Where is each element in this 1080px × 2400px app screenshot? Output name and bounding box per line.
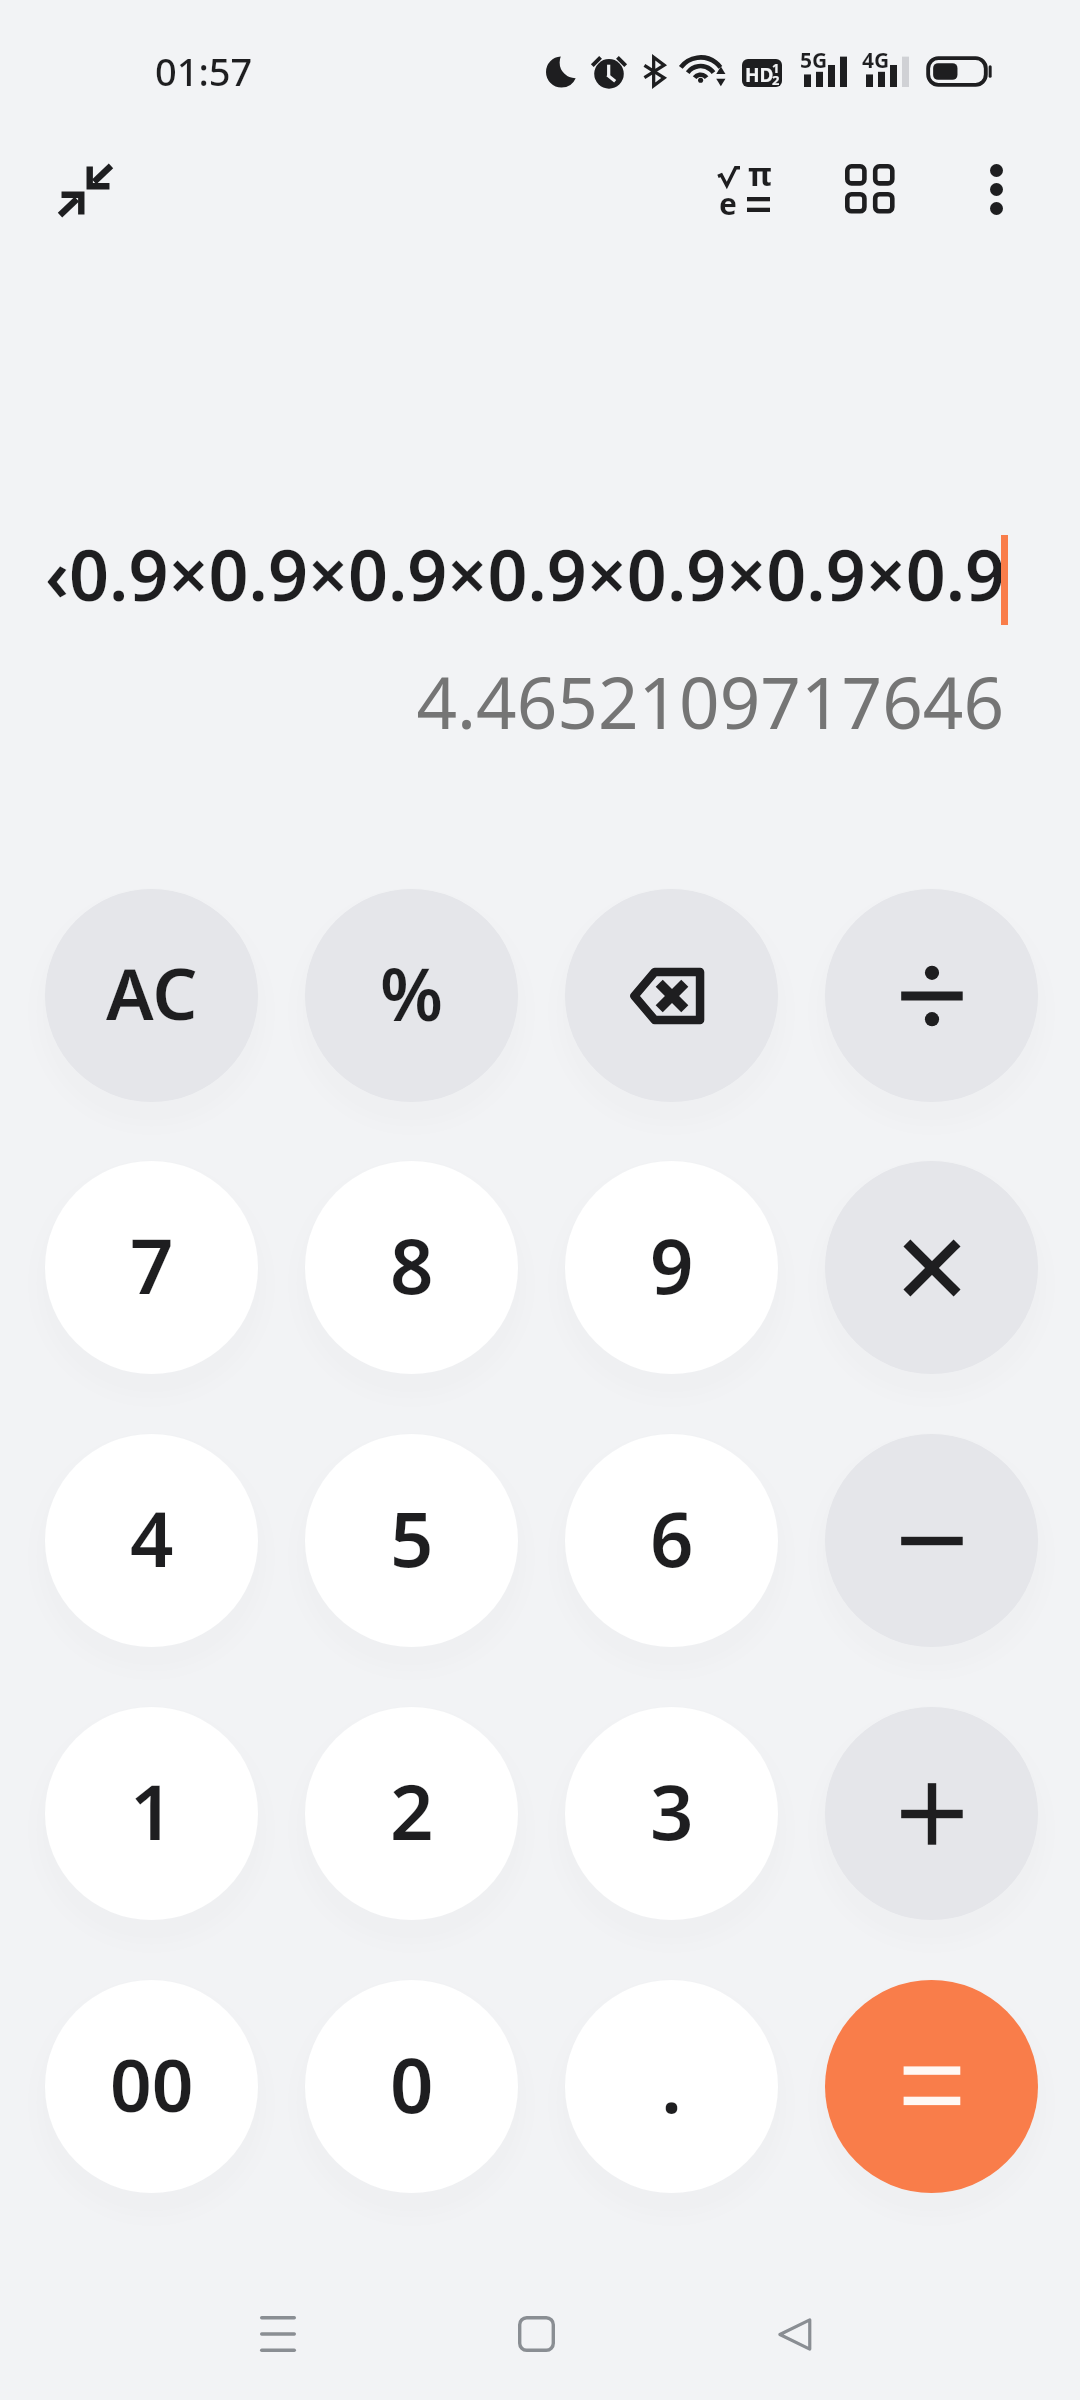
button[interactable]: Collapse	[35, 140, 135, 240]
button[interactable]: Equals	[825, 1980, 1038, 2193]
button[interactable]: 6	[565, 1434, 778, 1647]
button[interactable]: 3	[565, 1707, 778, 1920]
button[interactable]: Unit converter	[815, 134, 925, 244]
staticText: π	[748, 152, 772, 196]
staticText: 4	[130, 1486, 174, 1590]
staticText: 5G	[800, 46, 828, 75]
button[interactable]: 7	[45, 1161, 258, 1374]
button[interactable]: Back	[739, 2279, 849, 2389]
button[interactable]: 1	[45, 1707, 258, 1920]
button[interactable]: Home	[481, 2279, 591, 2389]
button[interactable]: 2	[305, 1707, 518, 1920]
button[interactable]: 5	[305, 1434, 518, 1647]
staticText: 1	[772, 59, 780, 77]
staticText: %	[380, 944, 444, 1042]
button[interactable]: Recent apps	[223, 2279, 333, 2389]
staticText: 2	[390, 1759, 434, 1863]
button[interactable]: .	[565, 1980, 778, 2193]
staticText: 0	[390, 2032, 434, 2136]
staticText: 9	[650, 1213, 694, 1317]
staticText: 2	[772, 71, 780, 89]
button[interactable]: Divide	[825, 889, 1038, 1102]
button[interactable]: Plus	[825, 1707, 1038, 1920]
staticText: 01:57	[155, 45, 253, 97]
staticText: 7	[130, 1213, 174, 1317]
staticText: ‹0.9×0.9×0.9×0.9×0.9×0.9×0.9	[45, 526, 1006, 621]
staticText: e	[719, 183, 737, 224]
button[interactable]: 0	[305, 1980, 518, 2193]
button[interactable]: More options	[941, 134, 1051, 244]
staticText: 8	[390, 1213, 434, 1317]
button[interactable]: 4	[45, 1434, 258, 1647]
button[interactable]: AC	[45, 889, 258, 1102]
button[interactable]: %	[305, 889, 518, 1102]
staticText: HD	[745, 62, 774, 88]
staticText: .	[661, 2032, 682, 2136]
button[interactable]: 9	[565, 1161, 778, 1374]
staticText: 4G	[862, 46, 890, 75]
button[interactable]: 00	[45, 1980, 258, 2193]
staticText: 1	[130, 1759, 174, 1863]
button[interactable]: Scientific mode	[689, 135, 799, 245]
staticText: 3	[650, 1759, 694, 1863]
staticText: 6	[650, 1486, 694, 1590]
staticText: AC	[106, 944, 198, 1041]
button[interactable]: Backspace	[565, 889, 778, 1102]
button[interactable]: Minus	[825, 1434, 1038, 1647]
staticText: 00	[110, 2034, 194, 2133]
button[interactable]: 8	[305, 1161, 518, 1374]
staticText: 4.4652109717646	[0, 653, 1004, 750]
button[interactable]: Multiply	[825, 1161, 1038, 1374]
staticText: 5	[390, 1486, 434, 1590]
